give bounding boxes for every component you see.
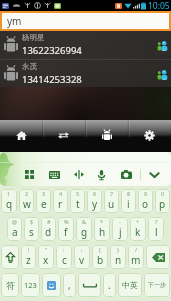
staticText: @	[12, 218, 17, 225]
staticText: w	[23, 197, 31, 211]
button[interactable]: -	[112, 217, 128, 241]
button[interactable]: #	[41, 217, 56, 241]
button[interactable]: .	[103, 273, 116, 297]
button[interactable]: 永茂	[0, 60, 171, 88]
staticText: ,	[68, 278, 71, 292]
staticText: t	[76, 197, 80, 211]
staticText: .	[108, 278, 111, 292]
button[interactable]: 8	[121, 189, 136, 213]
staticText: j	[119, 225, 122, 239]
button[interactable]: 9	[138, 189, 153, 213]
staticText: v	[79, 253, 85, 267]
button[interactable]: ?	[148, 217, 164, 241]
button[interactable]: $	[24, 217, 39, 241]
staticText: p	[159, 197, 166, 211]
button[interactable]: Keyboard	[47, 167, 62, 182]
staticText: 杨明星	[22, 33, 45, 42]
button[interactable]: 0	[155, 189, 170, 213]
button[interactable]: "	[38, 245, 54, 269]
button[interactable]: ym	[2, 13, 169, 29]
button[interactable]: @	[7, 217, 22, 241]
button[interactable]: Settings	[128, 120, 171, 142]
button[interactable]: /	[128, 245, 144, 269]
staticText: q	[6, 197, 13, 211]
button[interactable]: 杨明星	[0, 31, 171, 59]
staticText: (	[99, 246, 101, 253]
button[interactable]: )	[110, 245, 126, 269]
staticText: :	[63, 246, 65, 253]
button[interactable]: Camera	[119, 167, 134, 182]
staticText: )	[117, 246, 119, 253]
button[interactable]: !	[21, 245, 36, 269]
staticText: %	[64, 218, 69, 225]
staticText: ym	[7, 14, 22, 28]
staticText: #	[47, 218, 51, 225]
staticText: -	[119, 218, 121, 225]
button[interactable]: 下一步	[144, 273, 170, 297]
button[interactable]: Space	[78, 273, 101, 297]
button[interactable]: Hide keyboard	[147, 167, 162, 182]
button[interactable]: (	[92, 245, 108, 269]
button[interactable]: 4	[53, 189, 68, 213]
staticText: a	[12, 225, 18, 239]
button[interactable]: Emoji	[42, 273, 61, 297]
staticText: &	[82, 218, 87, 225]
staticText: $	[30, 218, 34, 225]
button[interactable]: Apps	[85, 120, 128, 142]
button[interactable]: Resize	[71, 167, 86, 182]
button[interactable]: :	[56, 245, 72, 269]
button[interactable]: ;	[74, 245, 90, 269]
button[interactable]: 2	[19, 189, 34, 213]
staticText: 13414253328	[22, 73, 82, 86]
staticText: 123	[24, 280, 37, 290]
staticText: /	[135, 246, 138, 253]
staticText: 下一步	[148, 281, 166, 289]
button[interactable]: Backspace	[146, 245, 170, 269]
button[interactable]: %	[58, 217, 74, 241]
staticText: 3	[42, 190, 46, 197]
staticText: 6	[93, 190, 97, 197]
staticText: *	[100, 218, 104, 225]
staticText: r	[58, 197, 63, 211]
button[interactable]: 1	[1, 189, 17, 213]
staticText: 8	[127, 190, 131, 197]
staticText: s	[29, 225, 34, 239]
button[interactable]: +	[130, 217, 146, 241]
button[interactable]: &	[76, 217, 92, 241]
staticText: 9	[144, 190, 148, 197]
staticText: e	[41, 197, 47, 211]
staticText: x	[43, 253, 49, 267]
staticText: u	[108, 197, 115, 211]
staticText: h	[99, 225, 106, 239]
button[interactable]: Shift	[1, 245, 19, 269]
staticText: 0	[161, 190, 165, 197]
staticText: 4	[59, 190, 63, 197]
button[interactable]: 123	[21, 273, 40, 297]
staticText: o	[142, 197, 149, 211]
button[interactable]: 3	[36, 189, 51, 213]
button[interactable]: 5	[70, 189, 85, 213]
button[interactable]: Transfer	[42, 120, 85, 142]
staticText: g	[81, 225, 88, 239]
staticText: !	[28, 246, 30, 253]
button[interactable]: *	[94, 217, 110, 241]
button[interactable]: Menu	[22, 167, 37, 182]
button[interactable]: Home	[0, 120, 42, 142]
button[interactable]: 中英	[118, 273, 142, 297]
staticText: k	[135, 225, 141, 239]
staticText: 5	[76, 190, 80, 197]
staticText: y	[92, 197, 98, 211]
button[interactable]: Voice	[94, 167, 109, 182]
staticText: "	[45, 246, 48, 253]
button[interactable]: 6	[87, 189, 102, 213]
staticText: m	[131, 253, 141, 267]
button[interactable]: 7	[104, 189, 119, 213]
staticText: c	[62, 253, 67, 267]
staticText: 13622326994	[22, 44, 82, 57]
staticText: d	[45, 225, 52, 239]
button[interactable]: ,	[63, 273, 76, 297]
button[interactable]: 符	[1, 273, 19, 297]
staticText: ?	[155, 218, 158, 225]
staticText: l	[155, 225, 158, 239]
staticText: 永茂	[22, 62, 37, 71]
